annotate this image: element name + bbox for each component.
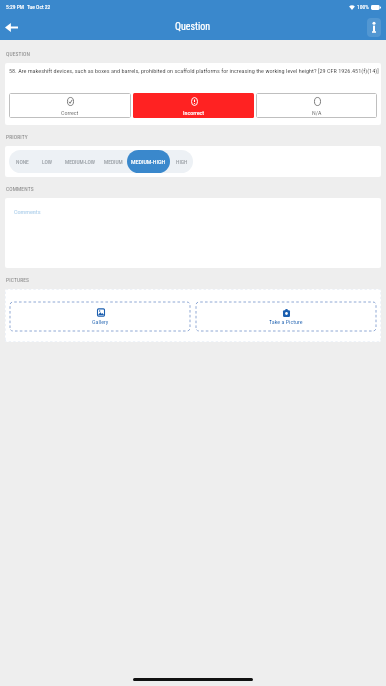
staticText: Incorrect [183, 109, 205, 116]
button[interactable]: MEDIUM-LOW [59, 150, 100, 173]
staticText: LOW [42, 159, 52, 165]
button[interactable]: LOW [35, 150, 59, 173]
button[interactable]: MEDIUM-HIGH [127, 150, 170, 173]
button[interactable]: Back [0, 16, 22, 38]
staticText: HIGH [176, 159, 188, 165]
staticText: MEDIUM-LOW [65, 159, 95, 165]
staticText: Tue Oct 22 [27, 4, 51, 10]
button[interactable]: Take a Picture [196, 302, 376, 331]
button[interactable]: Gallery [10, 302, 190, 331]
staticText: MEDIUM [104, 159, 123, 165]
staticText: N/A [312, 109, 322, 116]
button[interactable]: MEDIUM [100, 150, 127, 173]
button[interactable]: Incorrect [133, 93, 254, 118]
staticText: COMMENTS [6, 186, 34, 192]
staticText: QUESTION [6, 51, 31, 57]
button[interactable]: HIGH [170, 150, 193, 173]
button[interactable]: N/A [256, 93, 377, 118]
staticText: NONE [16, 159, 29, 165]
button[interactable]: Info [367, 18, 381, 37]
staticText: 58. Are makeshift devices, such as boxes… [9, 67, 379, 74]
staticText: PICTURES [6, 277, 30, 283]
staticText: Comments [14, 208, 41, 215]
staticText: Correct [61, 109, 79, 116]
button[interactable]: NONE [9, 150, 35, 173]
button[interactable]: Correct [9, 93, 131, 118]
staticText: 100% [357, 4, 369, 10]
staticText: PRIORITY [6, 134, 28, 140]
staticText: Question [175, 21, 211, 33]
staticText: MEDIUM-HIGH [131, 158, 166, 165]
staticText: Take a Picture [269, 318, 303, 325]
staticText: 5:29 PM [6, 4, 24, 10]
staticText: Gallery [92, 318, 109, 325]
